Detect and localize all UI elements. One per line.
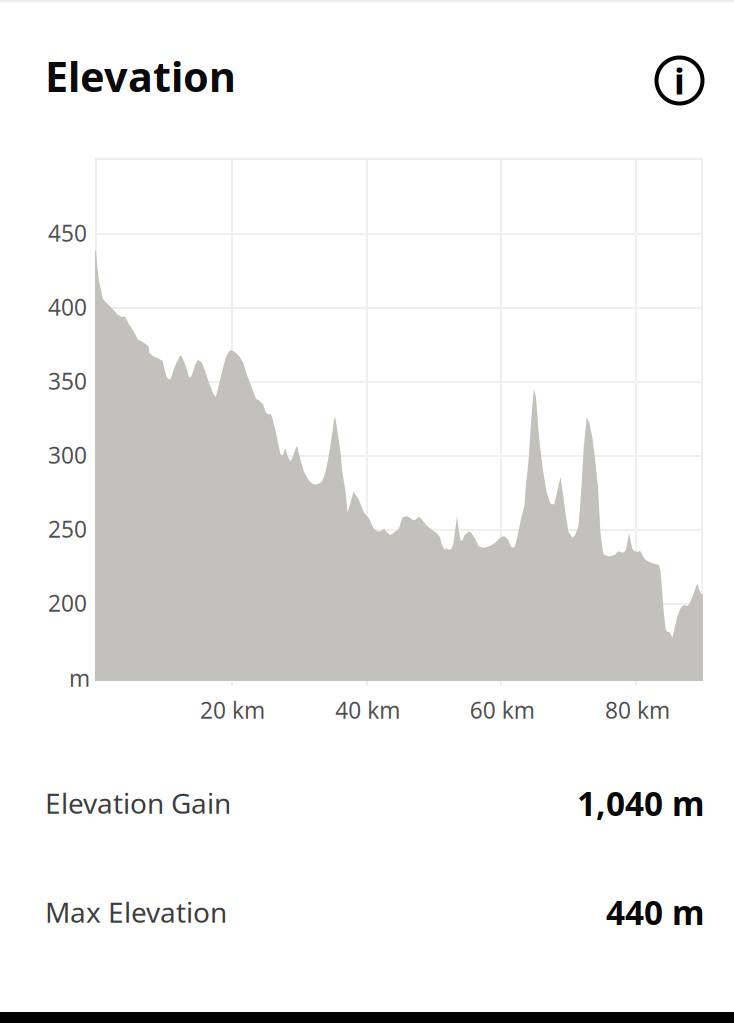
staticText: 60 km xyxy=(470,695,535,725)
staticText: Max Elevation xyxy=(45,893,227,931)
staticText: 40 km xyxy=(335,695,400,725)
staticText: 20 km xyxy=(200,695,265,725)
staticText: Elevation xyxy=(45,49,236,103)
button[interactable]: Max Elevation xyxy=(0,884,734,940)
staticText: 1,040 m xyxy=(577,781,705,825)
staticText: 300 xyxy=(48,440,87,470)
staticText: 400 xyxy=(48,292,87,322)
staticText: 80 km xyxy=(605,695,670,725)
staticText: i xyxy=(674,57,685,104)
staticText: 450 xyxy=(48,218,87,248)
staticText: 200 xyxy=(48,588,87,618)
button[interactable]: About elevation xyxy=(650,51,708,109)
staticText: m xyxy=(69,663,90,693)
staticText: 350 xyxy=(48,366,87,396)
button[interactable]: Elevation Gain xyxy=(0,775,734,831)
staticText: 250 xyxy=(48,514,87,544)
staticText: 440 m xyxy=(606,890,705,934)
staticText: Elevation Gain xyxy=(45,784,231,822)
